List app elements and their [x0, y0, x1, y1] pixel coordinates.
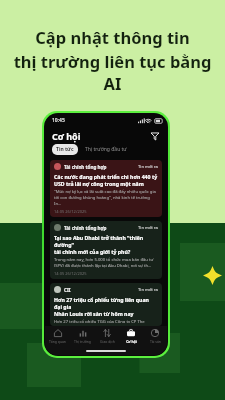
button[interactable]: Filter — [149, 130, 160, 141]
staticText: Các nước đang phát triển chi hơn 440 tỷ — [54, 173, 158, 180]
button[interactable]: Cơ hội — [119, 326, 143, 347]
staticText: 10:45 — [52, 117, 65, 124]
staticText: Tin mới ra — [138, 164, 158, 170]
staticText: Nhàn Louis rời sàn từ hôm nay — [54, 310, 134, 317]
staticText: Giao dịch — [100, 339, 115, 344]
staticText: Trong năm nay, hơn 5.000 tổ chức mua bán… — [54, 257, 154, 263]
button[interactable]: Tổng quan — [45, 326, 70, 347]
button[interactable]: Thị trường — [70, 326, 95, 347]
button[interactable]: Tin tức — [52, 144, 78, 155]
staticText: Tin tức — [56, 146, 74, 153]
button[interactable]: Tài sản — [143, 326, 167, 347]
button[interactable]: CII — [50, 283, 162, 326]
staticText: (SPV) đã được thành lập tại Abu Dhabi, n… — [54, 263, 152, 269]
staticText: Tài chính tổng hợp — [64, 164, 107, 170]
staticText: 14:05 26/12/2025 — [54, 271, 87, 276]
staticText: Cơ hội — [126, 339, 137, 344]
staticText: Tin mới ra — [138, 225, 158, 231]
staticText: thị trường liên tục bằng AI — [10, 50, 215, 94]
staticText: tài chính mới của giới tỷ phú? — [54, 248, 131, 255]
staticText: USD trả lãi nợ công trong một năm — [54, 180, 144, 187]
staticText: Tài chính tổng hợp — [64, 225, 107, 231]
button[interactable]: Tài chính tổng hợp — [50, 221, 162, 279]
button[interactable]: Tài chính tổng hợp — [50, 160, 162, 217]
staticText: tới con đường khủng hoảng", nhà kinh tế … — [54, 195, 158, 207]
staticText: Cơ hội — [52, 130, 81, 142]
staticText: 14:05 26/12/2025 — [54, 209, 87, 214]
button[interactable]: Giao dịch — [95, 326, 119, 347]
staticText: Tại sao Abu Dhabi trở thành "thiên đường… — [54, 234, 158, 248]
staticText: Cập nhật thông tin — [35, 26, 190, 48]
staticText: Hơn 27 triệu cổ phiếu TGG của Công ty CP… — [54, 319, 145, 323]
button[interactable]: Thị trường đầu tư — [82, 144, 130, 155]
staticText: "Mức nợ kỷ lục và lãi suất cao đã đẩy nh… — [54, 189, 156, 195]
staticText: Tổng quan — [49, 339, 66, 344]
staticText: Thị trường — [74, 339, 91, 344]
staticText: Tài sản — [150, 339, 161, 344]
staticText: Tin mới ra — [138, 287, 158, 293]
staticText: CII — [64, 287, 71, 293]
staticText: Thị trường đầu tư — [85, 146, 127, 153]
staticText: Hơn 27 triệu cổ phiếu từng liên quan đại… — [54, 296, 158, 310]
